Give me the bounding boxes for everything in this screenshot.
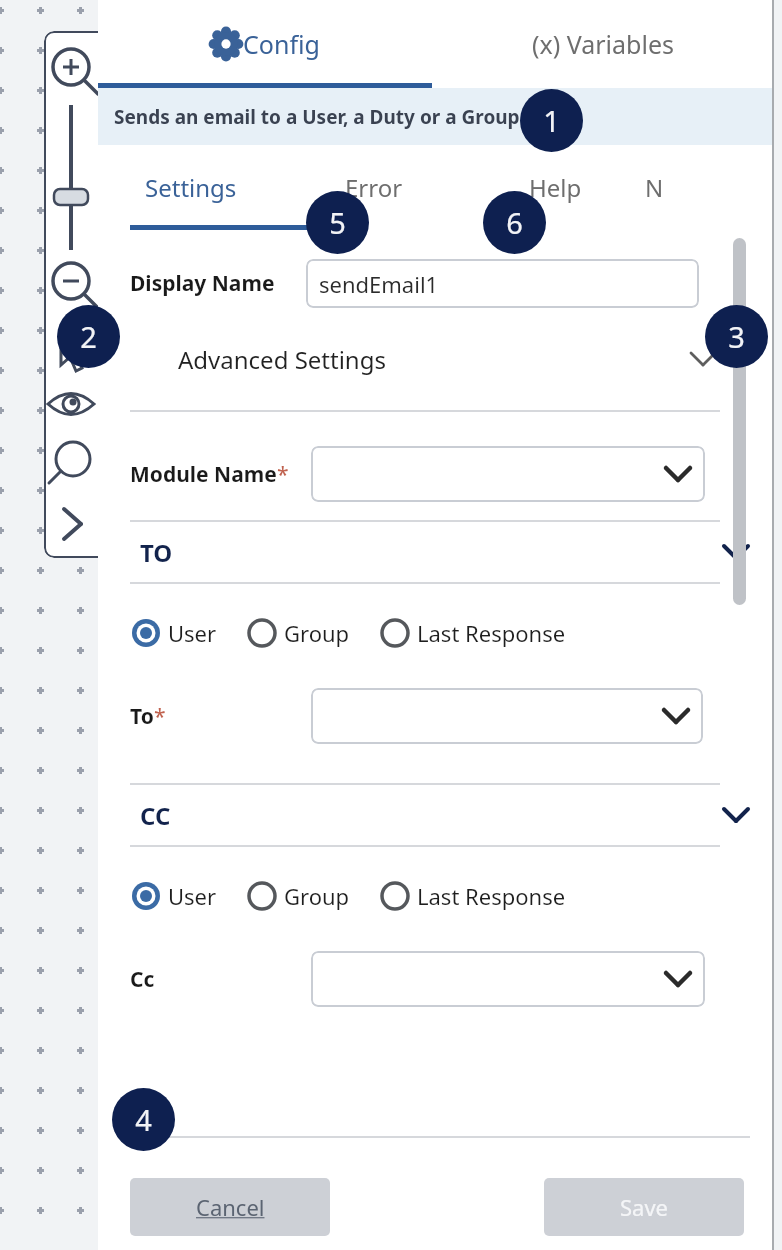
button[interactable]: Config xyxy=(98,0,432,88)
staticText: * xyxy=(277,460,289,489)
staticText: Config xyxy=(243,27,320,61)
staticText: 2 xyxy=(80,317,97,356)
staticText: Settings xyxy=(145,171,237,204)
staticText: User xyxy=(168,881,217,911)
button[interactable]: User xyxy=(130,610,217,656)
button[interactable]: User xyxy=(130,873,217,919)
button[interactable]: Save xyxy=(544,1178,744,1236)
staticText: Help xyxy=(529,171,582,204)
button[interactable]: Last Response xyxy=(379,873,566,919)
staticText: N xyxy=(645,171,664,204)
button[interactable]: TO xyxy=(98,522,773,582)
button[interactable]: Open dropdown xyxy=(311,951,705,1007)
button[interactable]: N xyxy=(645,145,765,230)
staticText: 1 xyxy=(543,101,560,140)
button[interactable]: CC xyxy=(98,785,773,845)
staticText: Cc xyxy=(130,965,155,994)
staticText: Last Response xyxy=(417,881,566,911)
staticText: Error xyxy=(345,171,403,204)
button[interactable]: Open dropdown xyxy=(311,446,705,502)
staticText: Group xyxy=(284,881,350,911)
button[interactable]: Cancel xyxy=(130,1178,330,1236)
staticText: sendEmail1 xyxy=(319,269,439,299)
staticText: 3 xyxy=(728,317,745,356)
staticText: Display Name xyxy=(130,269,275,298)
staticText: CC xyxy=(140,799,171,832)
staticText: 4 xyxy=(135,1100,152,1139)
button[interactable]: Last Response xyxy=(379,610,566,656)
staticText: * xyxy=(154,702,166,731)
button[interactable]: Group xyxy=(246,610,350,656)
button[interactable]: (x) Variables xyxy=(432,0,773,88)
button[interactable]: Advanced Settings xyxy=(98,331,773,387)
staticText: Module Name xyxy=(130,460,277,489)
staticText: User xyxy=(168,618,217,648)
staticText: 5 xyxy=(329,203,346,242)
staticText: Sends an email to a User, a Duty or a Gr… xyxy=(114,104,520,130)
button[interactable]: Help xyxy=(465,145,645,230)
staticText: Group xyxy=(284,618,350,648)
staticText: Cancel xyxy=(196,1192,265,1222)
button[interactable]: sendEmail1 xyxy=(306,259,699,308)
button[interactable]: Settings xyxy=(98,145,283,230)
button[interactable]: Group xyxy=(246,873,350,919)
staticText: To xyxy=(130,702,154,731)
staticText: Save xyxy=(620,1192,669,1222)
staticText: 6 xyxy=(506,203,523,242)
staticText: (x) Variables xyxy=(532,27,674,61)
staticText: Last Response xyxy=(417,618,566,648)
staticText: Advanced Settings xyxy=(178,343,386,376)
button[interactable]: Open dropdown xyxy=(311,688,703,744)
button[interactable]: Error xyxy=(283,145,465,230)
staticText: TO xyxy=(140,536,173,569)
